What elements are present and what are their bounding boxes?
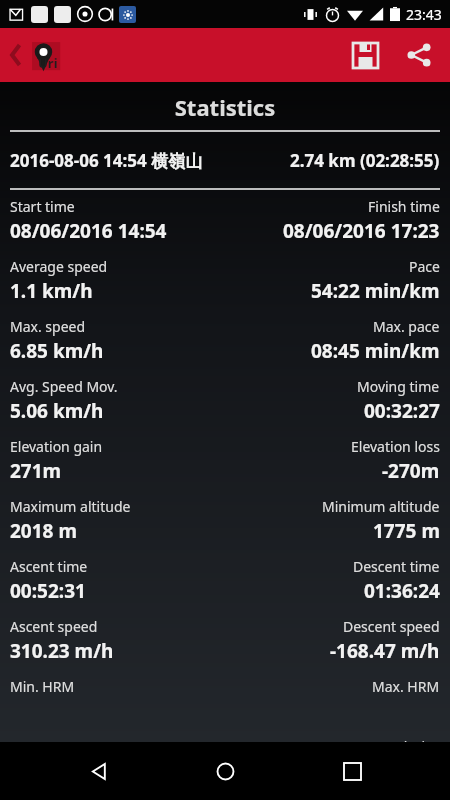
staticText: 08/06/2016 17:23: [283, 218, 440, 244]
staticText: Ascent time: [10, 557, 88, 576]
staticText: 00:32:27: [364, 398, 440, 424]
staticText: Max. HRM: [372, 677, 440, 696]
staticText: -270m: [382, 458, 440, 484]
staticText: 2016-08-06 14:54 横嶺山: [10, 149, 203, 172]
staticText: Avg. Speed Mov.: [10, 377, 118, 396]
button[interactable]: Avg. HRM: [0, 737, 450, 742]
staticText: 54:22 min/km: [311, 278, 440, 304]
staticText: Elevation gain: [10, 437, 103, 456]
button[interactable]: Ascent time: [0, 557, 450, 617]
button[interactable]: Elevation gain: [0, 437, 450, 497]
button[interactable]: Share: [392, 28, 446, 82]
button[interactable]: App logo: [26, 36, 64, 74]
staticText: 23:43: [406, 5, 442, 24]
button[interactable]: Back: [71, 743, 127, 799]
staticText: 271m: [10, 458, 62, 484]
staticText: 1.1 km/h: [10, 278, 93, 304]
staticText: Max. speed: [10, 317, 86, 336]
button[interactable]: Min. HRM: [0, 677, 450, 737]
button[interactable]: Max. speed: [0, 317, 450, 377]
staticText: 310.23 m/h: [10, 638, 114, 664]
button[interactable]: Start time: [0, 197, 450, 257]
button[interactable]: Recent apps: [324, 743, 380, 799]
staticText: 01:36:24: [364, 578, 440, 604]
button[interactable]: Avg. Speed Mov.: [0, 377, 450, 437]
staticText: 08/06/2016 14:54: [10, 218, 167, 244]
staticText: Uri: [38, 54, 58, 72]
staticText: 00:52:31: [10, 578, 86, 604]
staticText: 2018 m: [10, 518, 77, 544]
staticText: Moving time: [357, 377, 440, 396]
staticText: Descent time: [353, 557, 440, 576]
staticText: Minimum altitude: [322, 497, 440, 516]
staticText: Ascent speed: [10, 617, 98, 636]
staticText: Elevation loss: [351, 437, 440, 456]
staticText: Start time: [10, 197, 75, 216]
staticText: -168.47 m/h: [330, 638, 440, 664]
staticText: Finish time: [368, 197, 440, 216]
staticText: Descent speed: [343, 617, 440, 636]
button[interactable]: Maximum altitude: [0, 497, 450, 557]
staticText: Statistics: [0, 92, 450, 122]
button[interactable]: Save: [338, 28, 392, 82]
staticText: 6.85 km/h: [10, 338, 104, 364]
staticText: 2.74 km (02:28:55): [290, 149, 440, 172]
staticText: Min. HRM: [10, 677, 75, 696]
staticText: 08:45 min/km: [311, 338, 440, 364]
staticText: Calories: [387, 737, 440, 742]
button[interactable]: Ascent speed: [0, 617, 450, 677]
button[interactable]: Back: [8, 37, 24, 73]
staticText: Average speed: [10, 257, 108, 276]
staticText: 5.06 km/h: [10, 398, 104, 424]
staticText: Pace: [409, 257, 440, 276]
staticText: 1775 m: [373, 518, 440, 544]
button[interactable]: Home: [197, 743, 253, 799]
staticText: Max. pace: [373, 317, 440, 336]
staticText: Maximum altitude: [10, 497, 131, 516]
button[interactable]: Average speed: [0, 257, 450, 317]
